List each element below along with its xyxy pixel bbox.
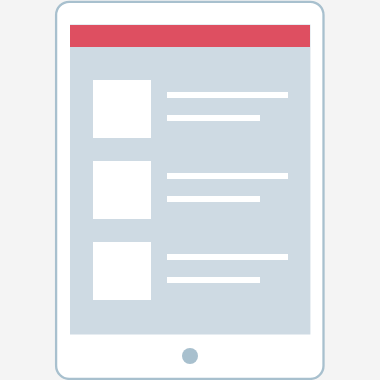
button[interactable]: List item 2 (70, 150, 310, 229)
button[interactable]: List item 3 (70, 231, 310, 310)
button[interactable]: List item 1 (70, 69, 310, 148)
button[interactable]: Home (182, 348, 198, 364)
